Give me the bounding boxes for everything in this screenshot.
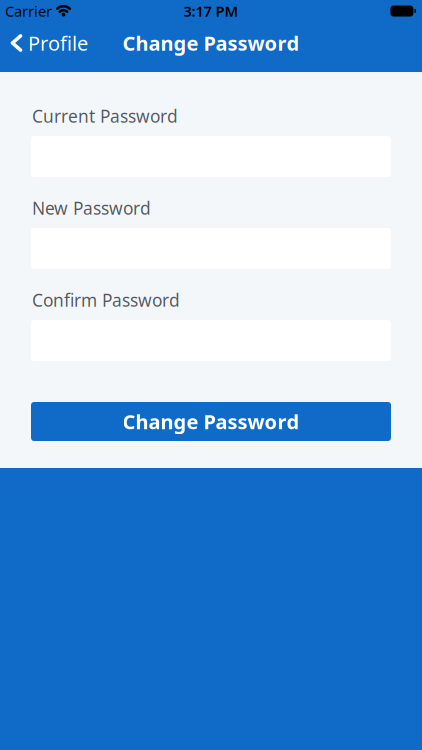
staticText: Current Password [32,104,178,127]
button[interactable]: Change Password [31,402,391,441]
staticText: New Password [32,196,151,219]
staticText: Confirm Password [32,288,180,311]
button[interactable]: Profile [0,30,88,56]
staticText: Carrier [5,1,52,21]
staticText: Change Password [122,408,299,435]
staticText: Profile [28,30,88,56]
staticText: 3:17 PM [183,1,238,21]
staticText: Change Password [122,30,299,56]
